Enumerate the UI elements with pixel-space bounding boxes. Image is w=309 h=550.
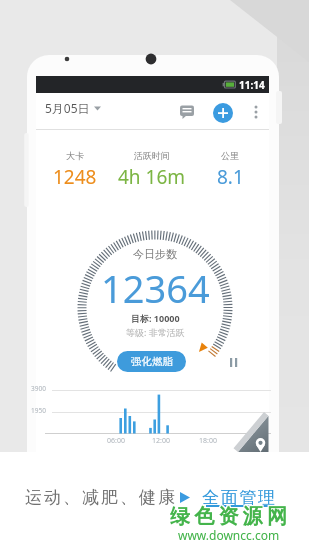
staticText: 公里 [221,150,239,161]
staticText: 11:14 [239,78,265,92]
staticText: 强化燃脂 [131,355,173,368]
staticText: 绿色资源网 [167,503,288,528]
staticText: 06:00 [107,436,125,446]
staticText: 18:00 [199,436,217,446]
staticText: 绿色资源网 [169,503,290,528]
button[interactable] [248,102,264,122]
staticText: 绿色资源网 [169,505,290,530]
button[interactable]: 5月05日 [45,100,102,116]
staticText: 8.1 [217,164,244,190]
staticText: 12364 [101,262,210,314]
staticText: 等级: 非常活跃 [126,326,185,338]
staticText: 1248 [53,164,97,190]
button[interactable]: 运动、减肥、健康 [24,487,277,508]
button[interactable]: 强化燃脂 [117,351,186,372]
staticText: 目标: 10000 [131,312,180,324]
staticText: 绿色资源网 [168,504,289,529]
staticText: 运动、减肥、健康 [24,487,176,508]
button[interactable] [226,354,242,370]
staticText: 绿色资源网 [167,505,288,530]
staticText: 全面管理 [202,487,277,508]
staticText: 大卡 [66,150,84,161]
staticText: 12:00 [152,436,170,446]
button[interactable] [176,102,198,124]
button[interactable] [213,103,233,123]
staticText: 1950 [31,406,46,415]
staticText: 5月05日 [45,100,90,116]
staticText: 4h 16m [118,164,186,190]
staticText: 3900 [31,384,46,393]
staticText: 活跃时间 [134,150,170,161]
staticText: 今日步数 [133,247,177,261]
button[interactable] [232,410,269,452]
staticText: www.downcc.com [178,527,280,543]
